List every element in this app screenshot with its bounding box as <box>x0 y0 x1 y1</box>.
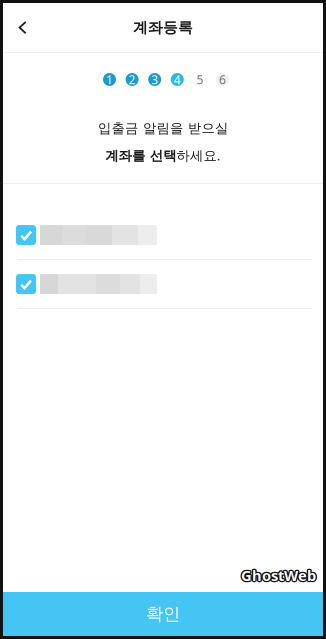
staticText: GhostWeb <box>241 567 316 586</box>
staticText: GhostWeb <box>240 566 315 586</box>
staticText: GhostWeb <box>240 565 315 584</box>
staticText: GhostWeb <box>242 565 317 585</box>
button[interactable]: 확인 <box>3 592 323 636</box>
staticText: GhostWeb <box>241 565 316 585</box>
button[interactable] <box>3 211 323 259</box>
staticText: 2 <box>129 71 136 87</box>
staticText: GhostWeb <box>242 566 317 586</box>
staticText: GhostWeb <box>242 565 317 584</box>
button[interactable] <box>3 260 323 308</box>
button[interactable]: Back <box>3 5 43 49</box>
staticText: 계좌를 선택하세요. <box>105 146 221 164</box>
staticText: 4 <box>174 71 181 87</box>
staticText: 계좌등록 <box>133 18 193 36</box>
staticText: 5 <box>196 71 203 87</box>
staticText: GhostWeb <box>241 564 316 584</box>
staticText: GhostWeb <box>240 565 315 585</box>
staticText: 6 <box>219 71 226 87</box>
staticText: 3 <box>151 71 158 87</box>
staticText: 1 <box>106 71 113 87</box>
staticText: 입출금 알림을 받으실 <box>98 120 228 136</box>
staticText: 확인 <box>146 603 180 625</box>
